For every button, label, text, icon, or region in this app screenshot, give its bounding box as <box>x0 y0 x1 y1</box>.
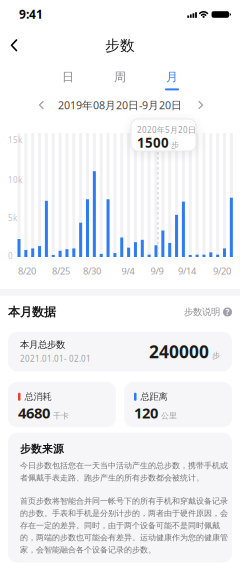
staticText: 公里 <box>161 411 177 421</box>
staticText: 120 <box>134 403 158 422</box>
button[interactable]: 周 <box>105 68 135 86</box>
staticText: 步 <box>171 140 179 150</box>
staticText: 9/4 <box>121 265 134 277</box>
staticText: 2020年5月20日 <box>137 124 196 135</box>
staticText: 9/20 <box>213 265 231 277</box>
staticText: 家，会智能融合各个设备记录的步数。 <box>20 545 156 555</box>
staticText: 10k <box>8 175 22 185</box>
staticText: 8/25 <box>52 265 70 277</box>
staticText: 存在一定的差异。同时，由于两个设备可能不是同时佩戴 <box>20 521 220 530</box>
staticText: 2019年08月20日-9月20日 <box>58 98 182 112</box>
button[interactable]: Next month <box>0 0 20 20</box>
staticText: 9/9 <box>150 265 163 277</box>
staticText: 步数说明 <box>184 306 220 318</box>
button[interactable]: 总消耗 <box>8 382 116 427</box>
button[interactable]: 总距离 <box>124 382 232 427</box>
staticText: 2021.01.01- 02.01 <box>20 353 91 364</box>
staticText: 千卡 <box>53 411 69 421</box>
staticText: 240000 <box>149 340 209 363</box>
staticText: 首页步数将智能合并同一帐号下的所有手机和穿戴设备记录 <box>20 496 228 506</box>
staticText: 总距离 <box>140 391 167 402</box>
staticText: 步 <box>212 351 220 360</box>
staticText: 9/14 <box>178 265 196 277</box>
staticText: 9:41 <box>19 6 43 22</box>
button[interactable]: 日 <box>53 68 83 86</box>
staticText: 步数来源 <box>20 442 64 456</box>
staticText: 日 <box>62 70 74 84</box>
staticText: 4680 <box>18 403 50 422</box>
button[interactable]: 月 <box>157 68 187 92</box>
staticText: 月 <box>166 70 178 84</box>
staticText: 0 <box>8 251 13 261</box>
staticText: 1500 <box>137 134 169 151</box>
button[interactable]: 本月总步数 <box>8 332 232 371</box>
staticText: 者佩戴手表走路、跑步产生的所有步数都会被统计。 <box>20 473 204 483</box>
staticText: 今日步数包括您在一天当中活动产生的总步数，携带手机或 <box>20 461 228 471</box>
staticText: 总消耗 <box>24 391 51 402</box>
staticText: 5k <box>8 213 17 223</box>
staticText: 本月总步数 <box>20 339 65 350</box>
staticText: 15k <box>8 135 22 145</box>
staticText: ? <box>225 307 229 317</box>
staticText: 周 <box>114 70 126 84</box>
staticText: 的，两端的步数也可能会有差异。运动健康作为您的健康管 <box>20 533 228 543</box>
button[interactable]: Back <box>0 0 28 28</box>
staticText: 8/20 <box>18 265 36 277</box>
button[interactable]: 步数说明 <box>184 306 232 318</box>
staticText: 8/30 <box>83 265 101 277</box>
staticText: 的步数。手表和手机是分别计步的，两者由于硬件原因，会 <box>20 508 228 518</box>
staticText: 步数 <box>105 36 135 54</box>
staticText: 本月数据 <box>8 305 56 319</box>
button[interactable]: Previous month <box>0 0 20 20</box>
